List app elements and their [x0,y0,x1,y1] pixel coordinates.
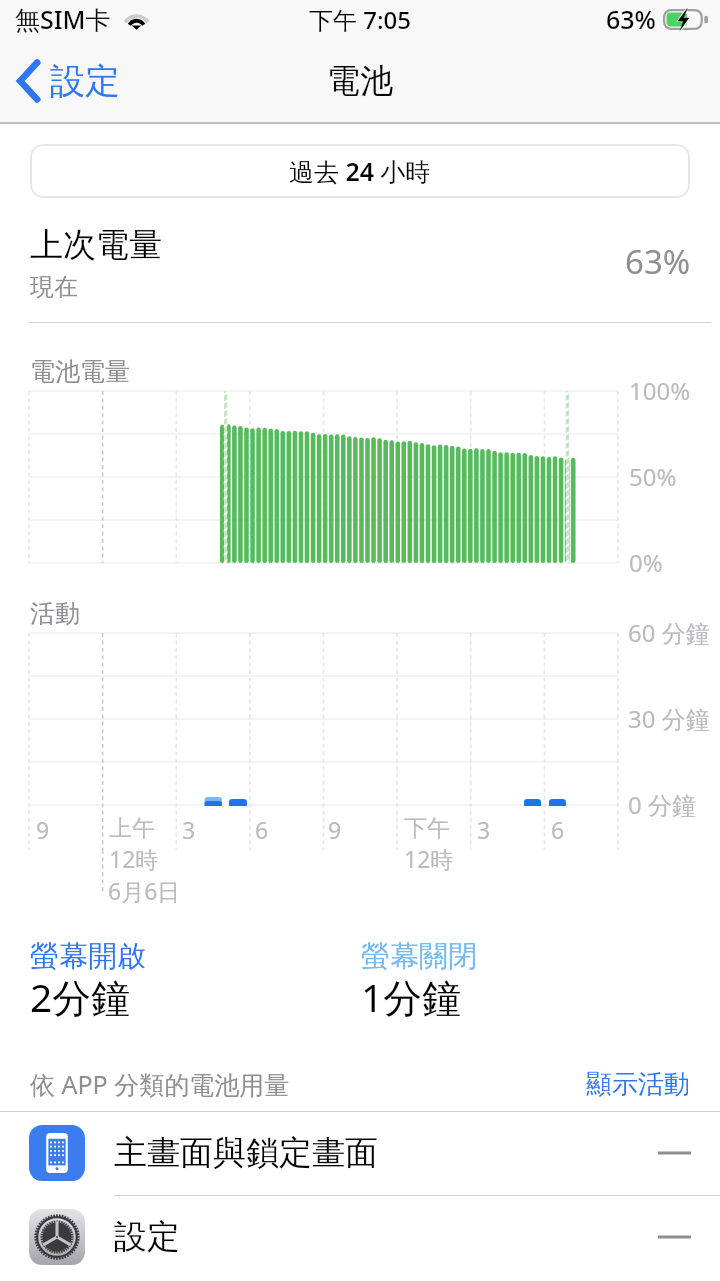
staticText: 0% [629,546,663,579]
button[interactable]: 主畫面與鎖定畫面 [0,1111,720,1195]
staticText: 下午 [404,814,450,843]
button[interactable]: 顯示活動 [580,1056,696,1112]
staticText: 100% [629,374,691,407]
staticText: 9 [36,814,50,845]
staticText: 依 APP 分類的電池用量 [30,1067,290,1101]
staticText: 下午 7:05 [309,3,411,36]
staticText: 上午 [109,814,155,843]
staticText: 3 [182,814,196,845]
staticText: 12時 [109,843,159,874]
staticText: 63% [625,239,691,284]
staticText: 9 [328,814,342,845]
staticText: 無SIM卡 [15,2,111,36]
staticText: 50% [629,460,677,493]
staticText: 60 分鐘 [628,616,710,649]
staticText: 6 [551,814,565,845]
staticText: 1分鐘 [361,970,462,1023]
staticText: 顯示活動 [586,1068,690,1101]
staticText: 電池電量 [30,356,130,387]
staticText: 主畫面與鎖定畫面 [114,1132,378,1174]
button[interactable]: 過去 24 小時 [30,144,690,198]
staticText: 6 [255,814,269,845]
staticText: 上次電量 [30,224,162,266]
staticText: 螢幕關閉 [361,938,477,975]
staticText: 63% [606,2,656,36]
staticText: 現在 [30,272,78,302]
staticText: 30 分鐘 [628,702,710,735]
staticText: 6月6日 [108,875,181,906]
staticText: 3 [477,814,491,845]
staticText: 設定 [50,59,120,103]
staticText: 電池 [327,60,393,102]
staticText: 過去 24 小時 [289,154,431,188]
staticText: 2分鐘 [30,970,131,1023]
staticText: 12時 [404,843,454,874]
button[interactable]: 設定 [0,44,134,118]
staticText: 0 分鐘 [628,788,696,821]
staticText: 活動 [30,598,80,629]
button[interactable]: 設定 [0,1195,720,1279]
staticText: 螢幕開啟 [30,938,146,975]
staticText: 設定 [114,1216,180,1258]
